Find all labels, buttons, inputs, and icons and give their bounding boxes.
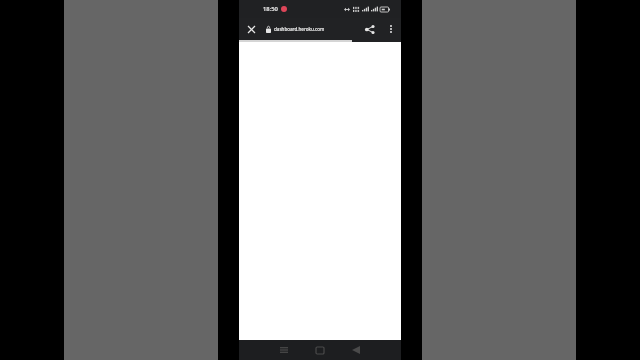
button[interactable]: Back — [346, 340, 366, 360]
button[interactable]: More options — [381, 18, 401, 40]
button[interactable]: Close — [239, 18, 263, 40]
staticText: dashboard.heroku.com — [274, 26, 325, 32]
button[interactable]: Share — [359, 18, 381, 40]
staticText: 18:50 — [263, 5, 278, 13]
button[interactable]: Home — [310, 340, 330, 360]
button[interactable]: Recents — [274, 340, 294, 360]
